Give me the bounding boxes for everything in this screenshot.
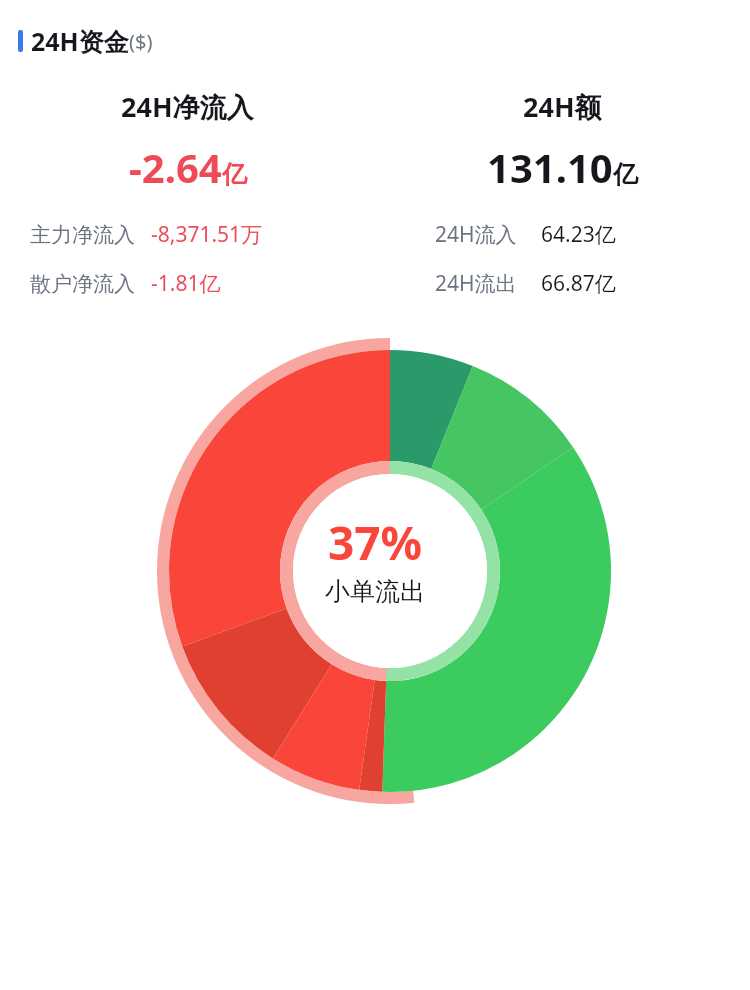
button[interactable]: 24H资金 — [18, 24, 732, 58]
staticText: 24H流入 — [435, 220, 517, 249]
staticText: -2.64 — [129, 140, 222, 194]
staticText: 66.87亿 — [541, 269, 616, 298]
staticText: 24H资金 — [31, 24, 129, 58]
staticText: 131.10 — [487, 140, 613, 194]
staticText: 24H流出 — [435, 269, 517, 298]
staticText: -8,371.51万 — [151, 220, 263, 249]
staticText: 散户净流入 — [30, 271, 135, 297]
staticText: 亿 — [222, 159, 247, 190]
button[interactable]: 24H流出 — [435, 269, 750, 298]
staticText: -1.81亿 — [151, 269, 221, 298]
button[interactable]: 24H流入 — [435, 220, 750, 249]
staticText: 24H净流入 — [121, 88, 254, 125]
staticText: ($) — [129, 28, 153, 55]
staticText: 24H额 — [523, 88, 602, 125]
button[interactable]: 主力净流入 — [30, 220, 375, 249]
button[interactable]: 散户净流入 — [30, 269, 375, 298]
staticText: 小单流出 — [325, 576, 425, 607]
button[interactable]: 37% — [0, 326, 750, 886]
staticText: 亿 — [613, 159, 638, 190]
staticText: 64.23亿 — [541, 220, 616, 249]
staticText: 主力净流入 — [30, 222, 135, 248]
staticText: 37% — [328, 511, 423, 574]
